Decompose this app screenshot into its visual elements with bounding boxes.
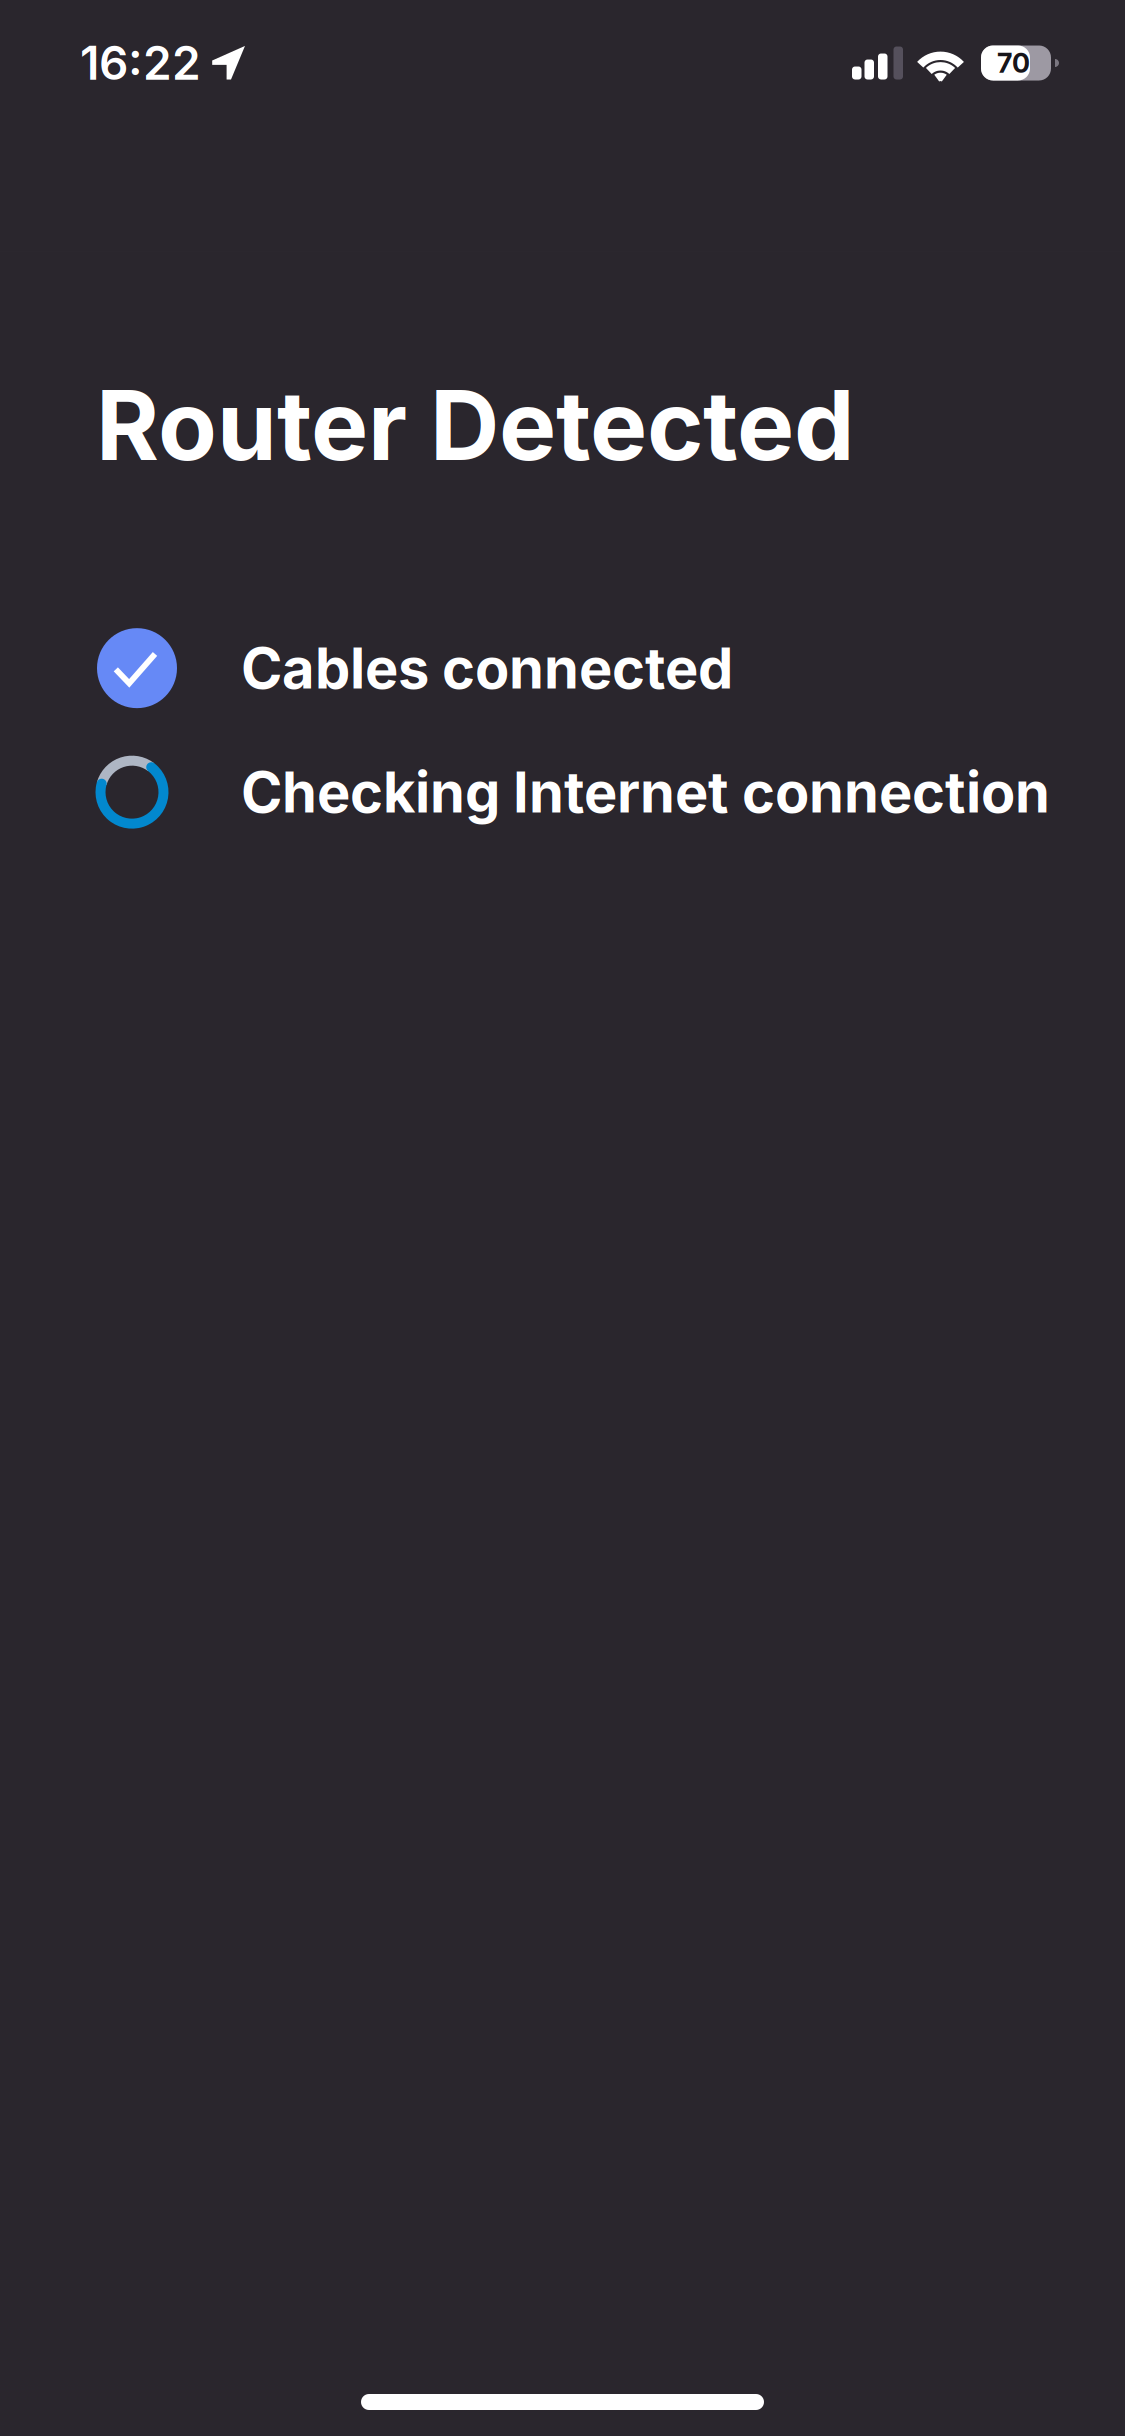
staticText: Cables connected bbox=[241, 634, 733, 702]
staticText: Router Detected bbox=[96, 367, 855, 483]
staticText: 70 bbox=[997, 47, 1030, 79]
staticText: Checking Internet connection bbox=[241, 758, 1050, 826]
staticText: 16:22 bbox=[80, 35, 201, 91]
button[interactable]: Checking Internet connection bbox=[97, 730, 1047, 854]
button[interactable]: Cables connected bbox=[97, 606, 1047, 730]
